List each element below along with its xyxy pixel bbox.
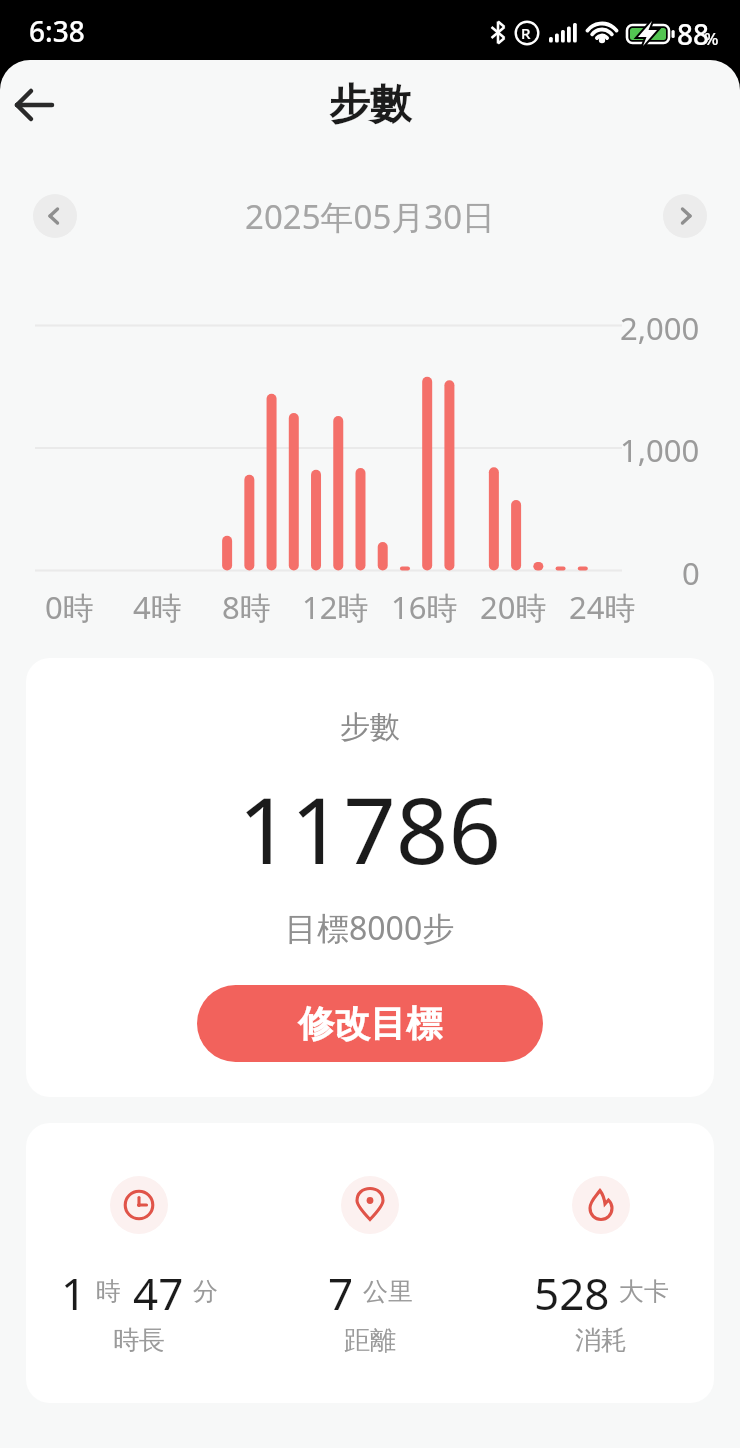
staticText: 11786 — [238, 766, 502, 891]
staticText: 消耗 — [575, 1324, 627, 1357]
staticText: R — [521, 23, 531, 43]
staticText: 距離 — [344, 1324, 396, 1357]
staticText: 47 — [133, 1263, 184, 1319]
staticText: 修改目標 — [298, 1001, 442, 1046]
button[interactable] — [0, 70, 70, 140]
button[interactable] — [33, 194, 77, 238]
staticText: 16時 — [391, 586, 458, 624]
staticText: 步數 — [340, 708, 400, 746]
staticText: 大卡 — [619, 1276, 669, 1307]
staticText: % — [704, 27, 719, 50]
staticText: 88 — [677, 15, 710, 53]
staticText: 528 — [534, 1263, 610, 1319]
button[interactable]: 修改目標 — [197, 985, 543, 1062]
staticText: 20時 — [480, 586, 547, 624]
staticText: 0時 — [45, 586, 94, 624]
staticText: 步數 — [329, 79, 411, 131]
staticText: 2025年05月30日 — [245, 194, 496, 238]
staticText: 0 — [682, 552, 700, 590]
staticText: 6:38 — [29, 12, 85, 50]
staticText: 1,000 — [620, 429, 700, 467]
staticText: 8時 — [222, 586, 271, 624]
staticText: 時 — [96, 1276, 121, 1307]
staticText: 12時 — [302, 586, 369, 624]
staticText: 2,000 — [620, 307, 700, 345]
staticText: 1 — [61, 1263, 87, 1319]
staticText: 時長 — [113, 1324, 165, 1357]
staticText: 4時 — [133, 586, 182, 624]
staticText: 24時 — [569, 586, 636, 624]
staticText: 公里 — [363, 1276, 413, 1307]
staticText: 7 — [328, 1263, 354, 1319]
staticText: 目標8000步 — [285, 906, 455, 950]
button[interactable] — [663, 194, 707, 238]
staticText: 分 — [193, 1276, 218, 1307]
